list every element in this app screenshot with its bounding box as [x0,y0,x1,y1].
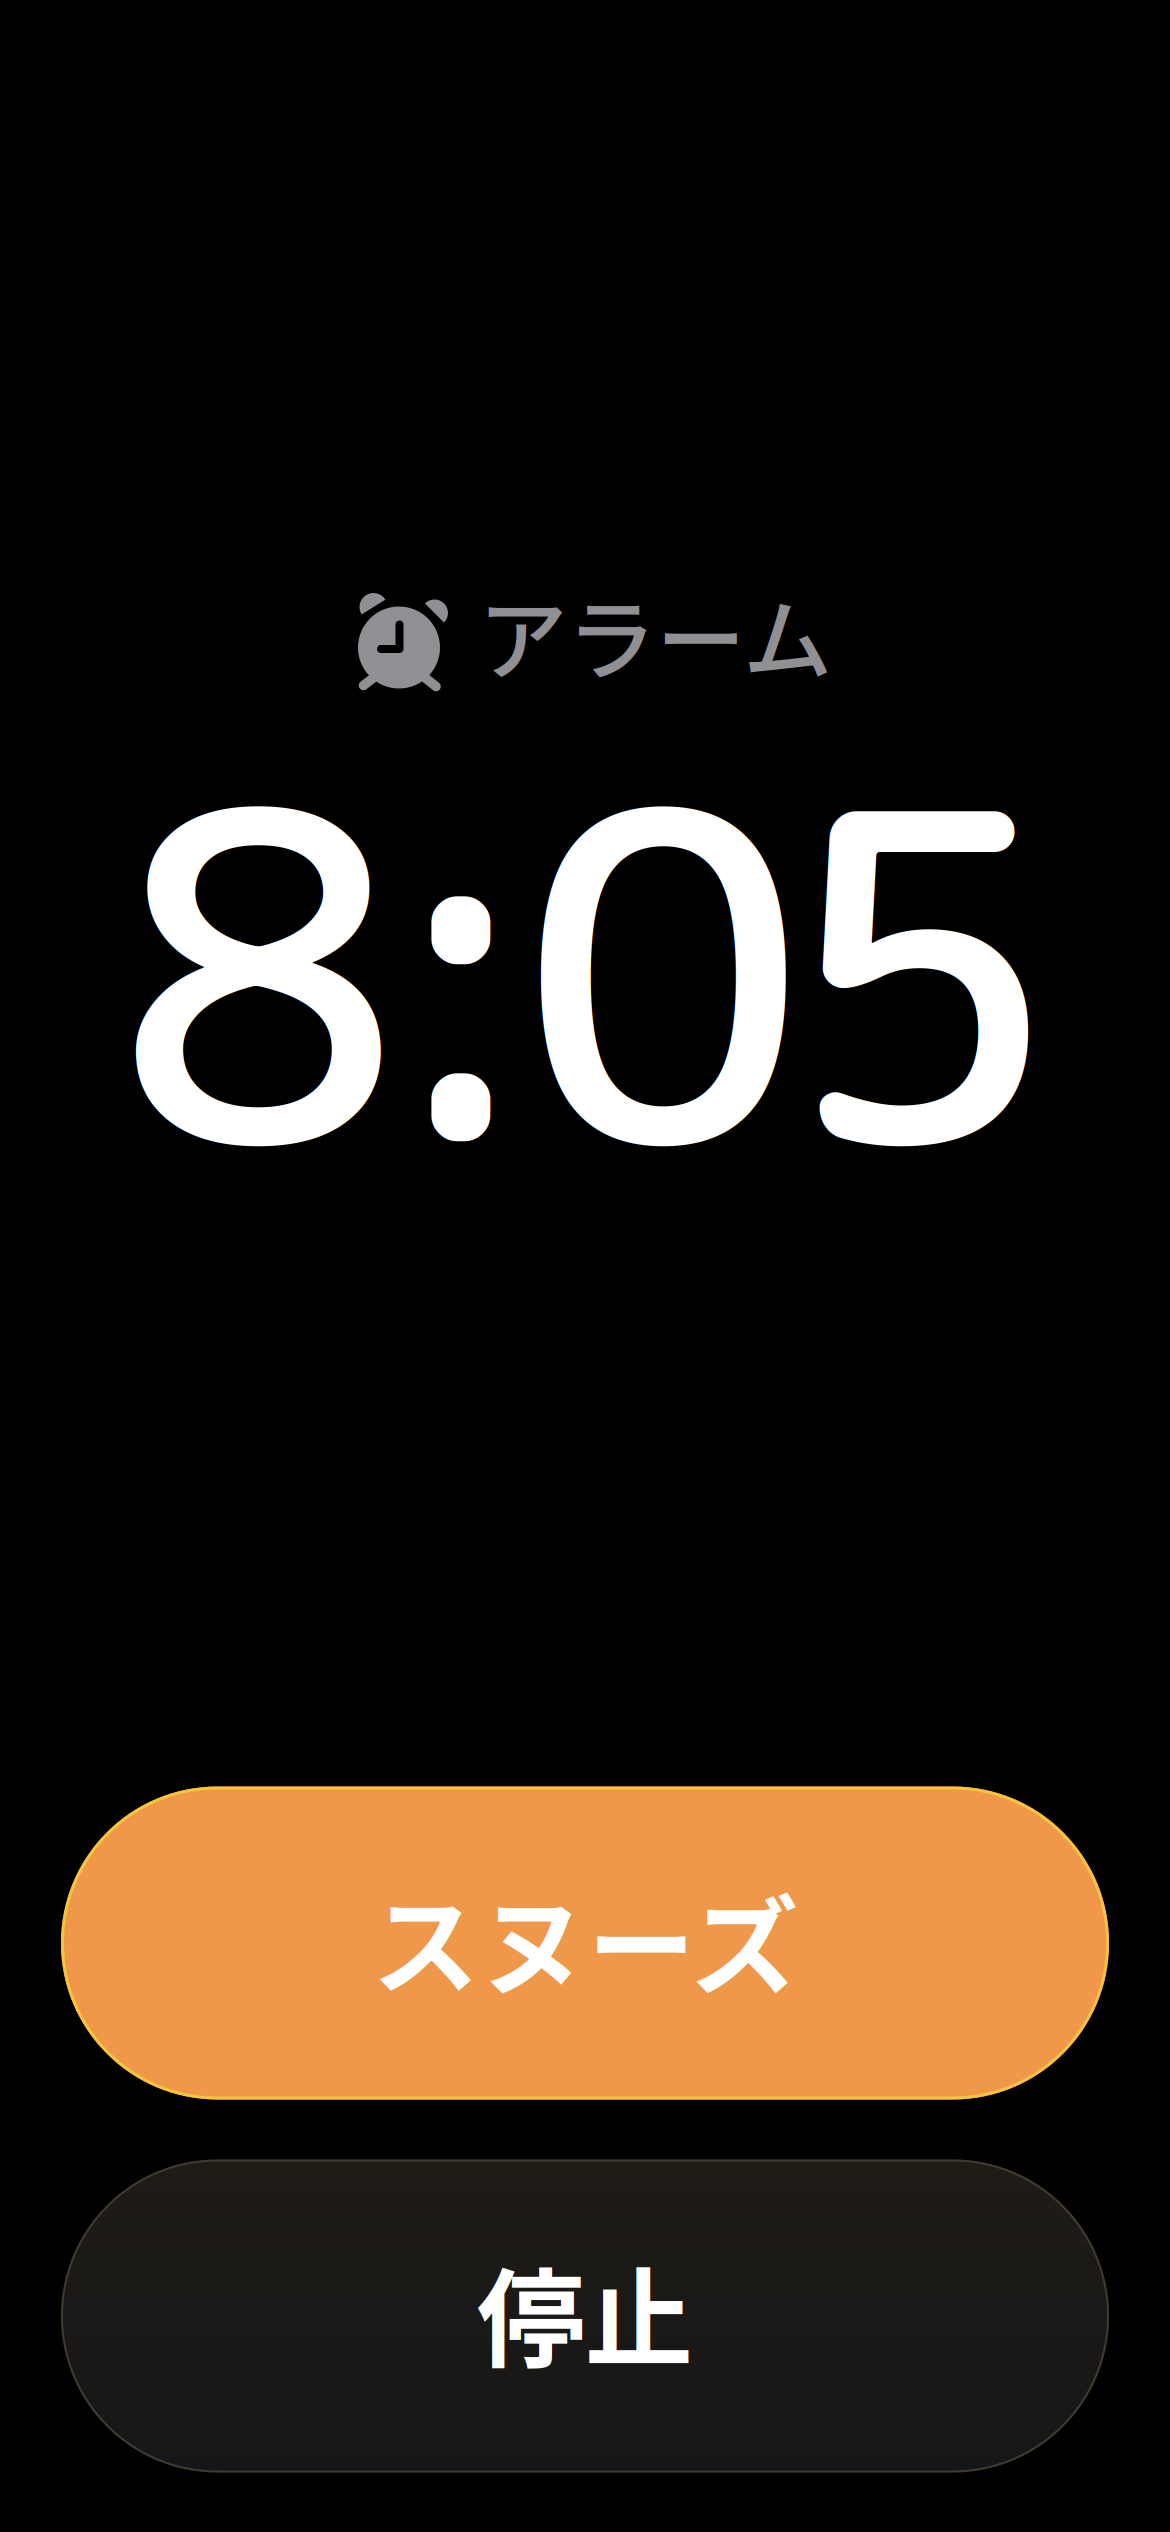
button[interactable]: 停止 [61,2159,1109,2472]
button[interactable]: スヌーズ [61,1786,1109,2099]
staticText: 停止 [477,2234,693,2390]
staticText: 8:05 [115,654,1062,1286]
staticText: スヌーズ [371,1861,798,2017]
staticText: アラーム [478,569,832,699]
